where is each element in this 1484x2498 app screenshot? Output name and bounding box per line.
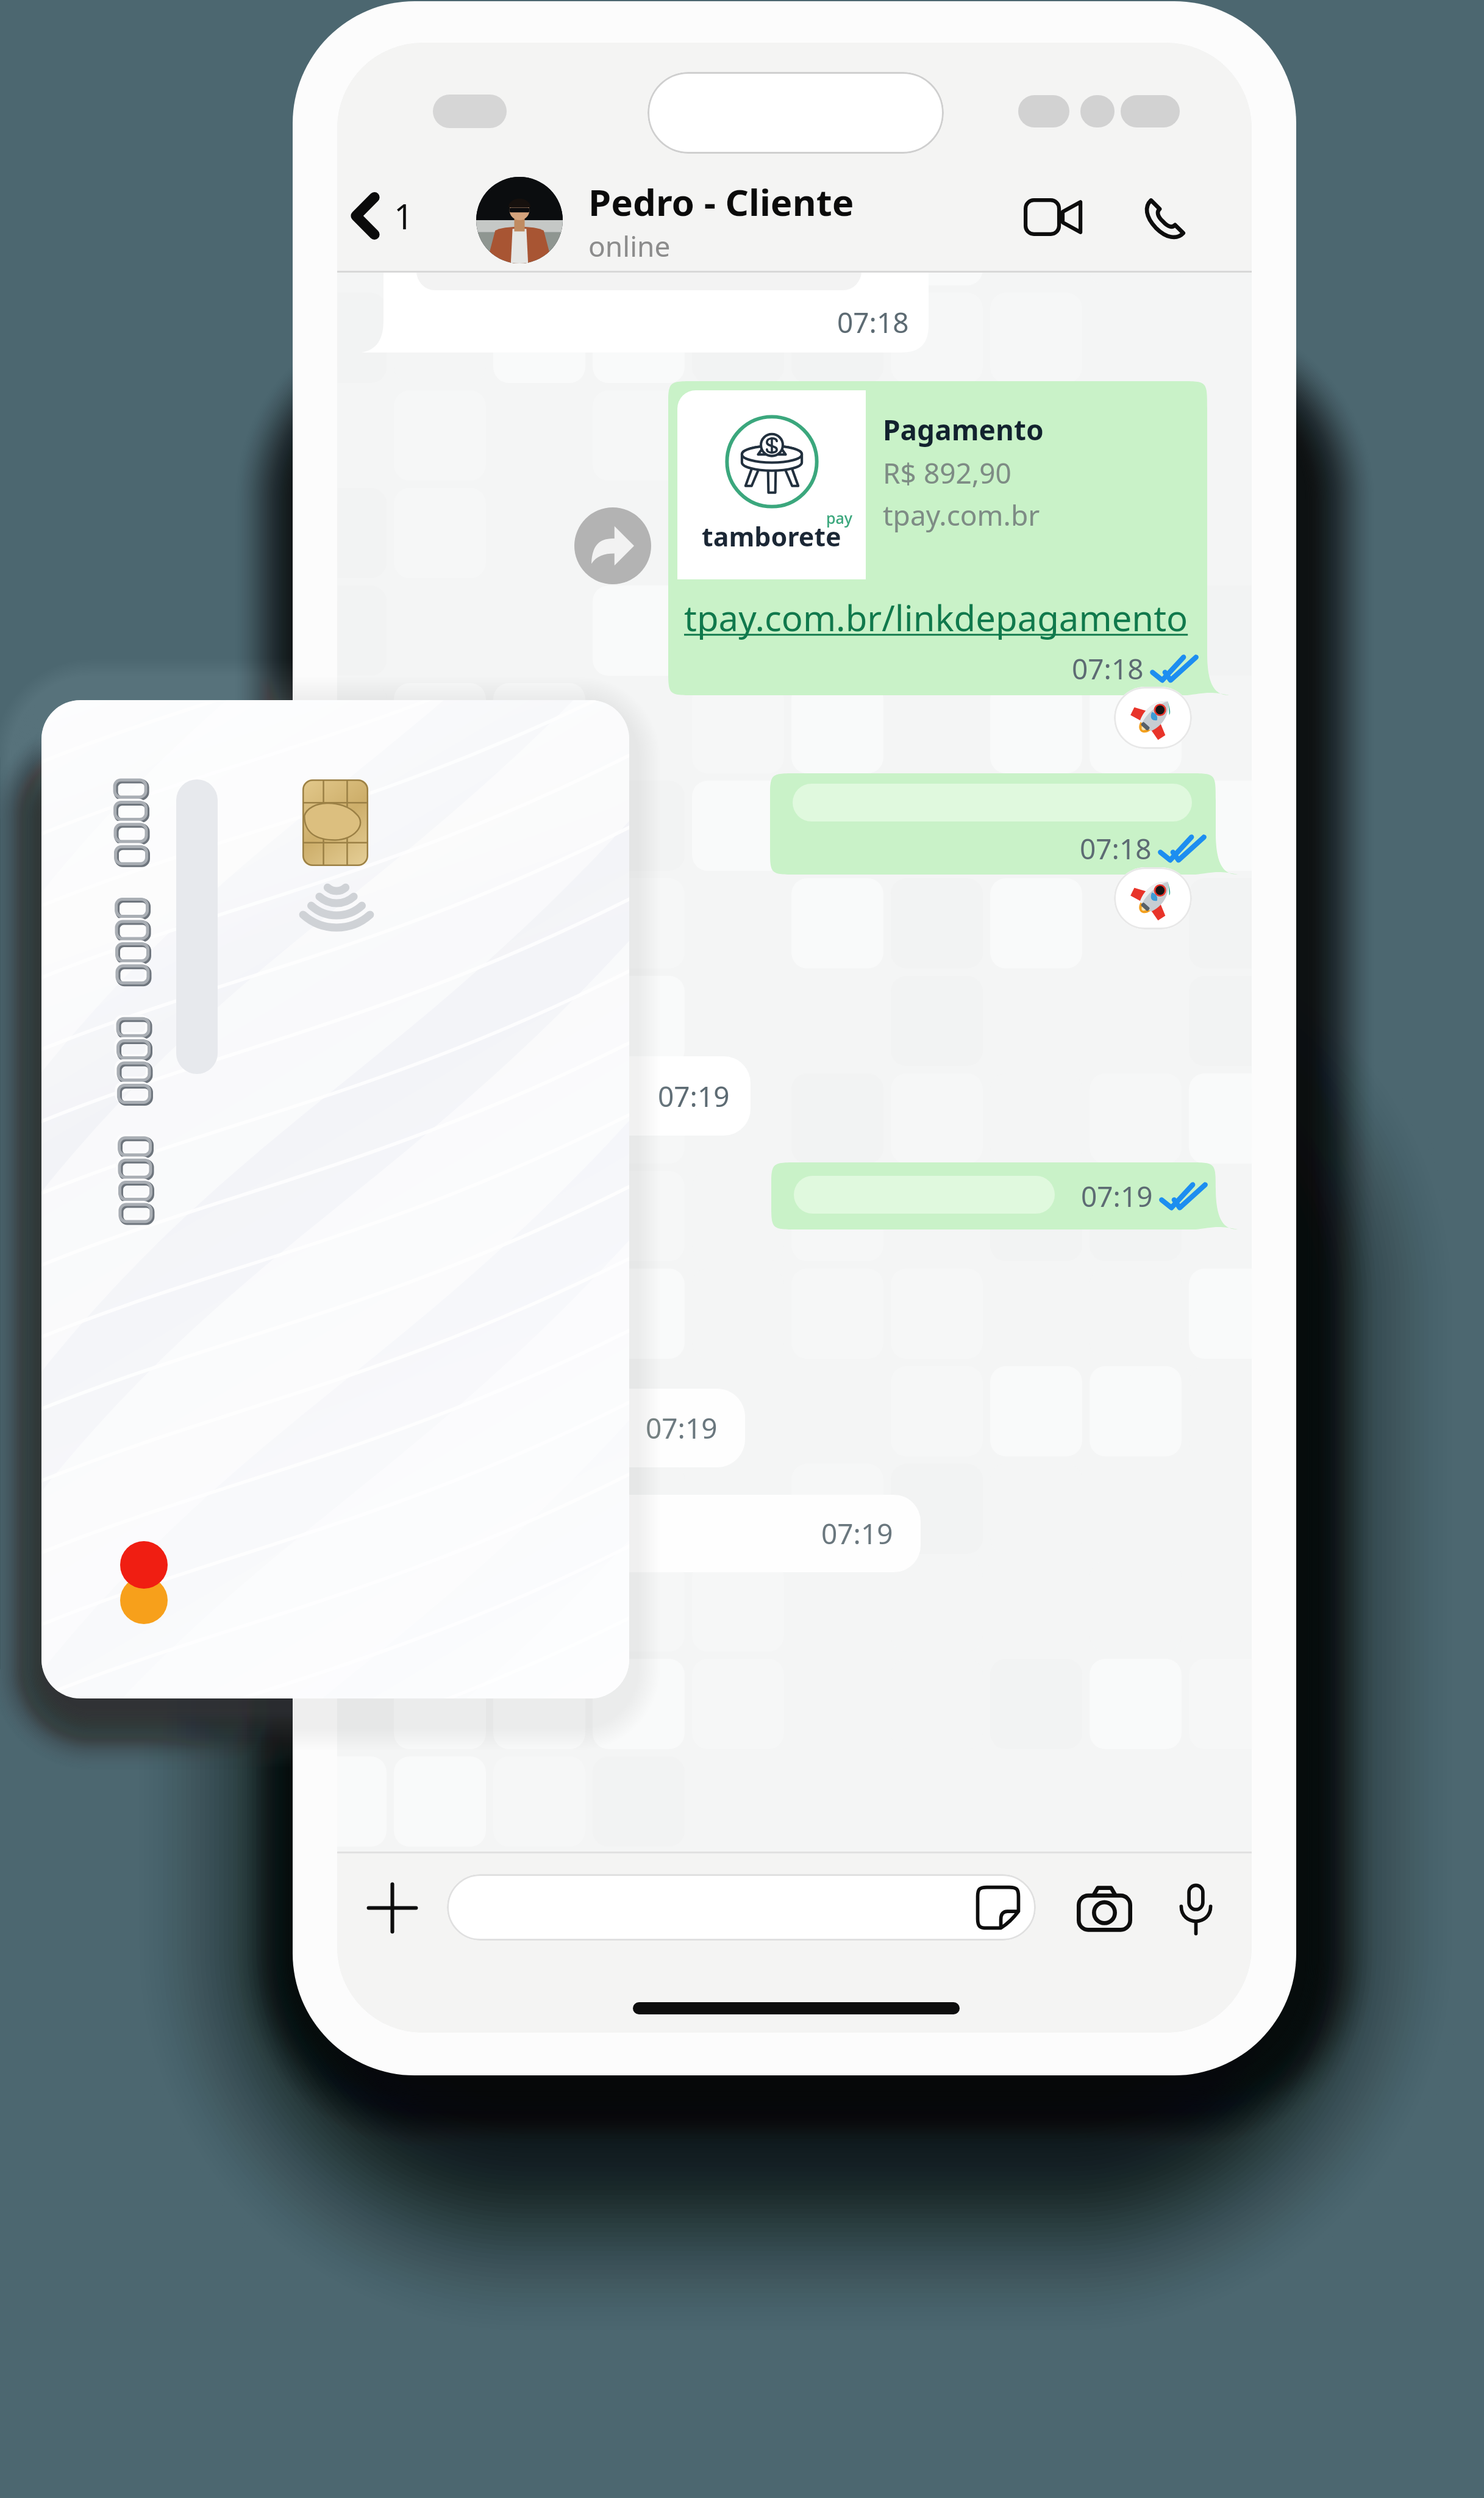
button[interactable]: Rocket reaction	[1114, 687, 1192, 749]
staticText: 07:19	[1081, 1177, 1153, 1215]
button[interactable]: Rocket reaction	[1114, 867, 1192, 929]
button[interactable]: Pagamento R$ 892,90 tpay.com.br	[668, 381, 1229, 695]
staticText: 1	[394, 193, 414, 239]
staticText: R$ 892,90	[883, 454, 1011, 492]
button[interactable]: Sticker	[975, 1884, 1021, 1931]
button[interactable]: Forward	[574, 507, 651, 584]
staticText: 07:18	[1072, 650, 1144, 688]
button[interactable]: Camera	[1071, 1879, 1138, 1939]
button[interactable]: Back	[345, 185, 421, 246]
staticText: 07:19	[646, 1409, 718, 1447]
staticText: 07:18	[1080, 829, 1152, 868]
button[interactable]: Voice call	[1135, 188, 1196, 249]
staticText: tpay.com.br/linkdepagamento	[684, 593, 1188, 642]
staticText: 07:19	[821, 1514, 893, 1553]
staticText: tamborete	[702, 518, 841, 554]
button[interactable]: Attach	[362, 1877, 423, 1939]
button[interactable]: Voice message	[1169, 1877, 1222, 1942]
staticText: pay	[826, 507, 853, 528]
staticText: 07:18	[837, 303, 909, 342]
staticText: online	[588, 227, 671, 265]
staticText: Pedro - Cliente	[588, 177, 854, 227]
staticText: 07:19	[658, 1077, 730, 1115]
button[interactable]: Message	[447, 1874, 1036, 1941]
staticText: tpay.com.br	[883, 496, 1040, 534]
staticText: Pagamento	[883, 410, 1044, 449]
button[interactable]: Video call	[1018, 192, 1089, 242]
